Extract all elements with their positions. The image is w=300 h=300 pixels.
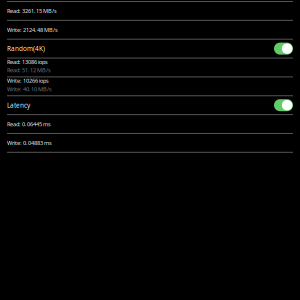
button[interactable]: Random(4K) bbox=[0, 40, 300, 58]
staticText: Random(4K) bbox=[7, 44, 45, 53]
staticText: Write: 10266 iops bbox=[7, 77, 49, 84]
staticText: Read: 3261.15 MB/s bbox=[7, 7, 57, 15]
staticText: Write: 40.10 MB/s bbox=[7, 85, 52, 93]
button[interactable]: Latency bbox=[0, 96, 300, 114]
staticText: Read: 0.06445 ms bbox=[7, 120, 51, 128]
staticText: Read: 51.12 MB/s bbox=[7, 66, 51, 74]
staticText: Read: 13086 iops bbox=[7, 58, 48, 65]
staticText: Latency bbox=[7, 101, 30, 109]
staticText: Write: 0.04883 ms bbox=[7, 139, 52, 147]
staticText: Write: 2124.48 MB/s bbox=[7, 26, 58, 34]
